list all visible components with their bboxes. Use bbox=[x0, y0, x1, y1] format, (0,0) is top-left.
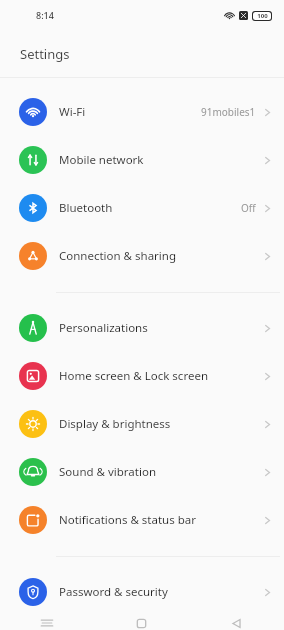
staticText: 91mobiles1 bbox=[201, 105, 256, 119]
button[interactable]: Sound & vibration bbox=[0, 448, 284, 496]
button[interactable]: Mobile network bbox=[0, 136, 284, 184]
staticText: Display & brightness bbox=[59, 416, 171, 432]
button[interactable]: Notifications & status bar bbox=[0, 496, 284, 544]
button[interactable]: Home bbox=[94, 616, 189, 630]
staticText: 8:14 bbox=[36, 9, 54, 21]
staticText: Home screen & Lock screen bbox=[59, 368, 208, 384]
staticText: Off bbox=[241, 201, 256, 215]
staticText: Bluetooth bbox=[59, 200, 113, 216]
button[interactable]: Connection & sharing bbox=[0, 232, 284, 280]
staticText: Password & security bbox=[59, 584, 168, 600]
button[interactable]: Personalizations bbox=[0, 304, 284, 352]
staticText: Wi-Fi bbox=[59, 104, 86, 120]
button[interactable]: Back bbox=[189, 616, 284, 630]
staticText: 100 bbox=[257, 12, 268, 20]
button[interactable]: Bluetooth bbox=[0, 184, 284, 232]
button[interactable]: Display & brightness bbox=[0, 400, 284, 448]
button[interactable]: Home screen & Lock screen bbox=[0, 352, 284, 400]
button[interactable]: Password & security bbox=[0, 568, 284, 616]
button[interactable]: Recent apps bbox=[0, 616, 94, 630]
staticText: Settings bbox=[20, 45, 70, 63]
staticText: Connection & sharing bbox=[59, 248, 176, 264]
button[interactable]: Wi-Fi bbox=[0, 88, 284, 136]
staticText: Mobile network bbox=[59, 152, 144, 168]
staticText: Personalizations bbox=[59, 320, 148, 336]
staticText: Sound & vibration bbox=[59, 464, 156, 480]
staticText: Notifications & status bar bbox=[59, 512, 196, 528]
